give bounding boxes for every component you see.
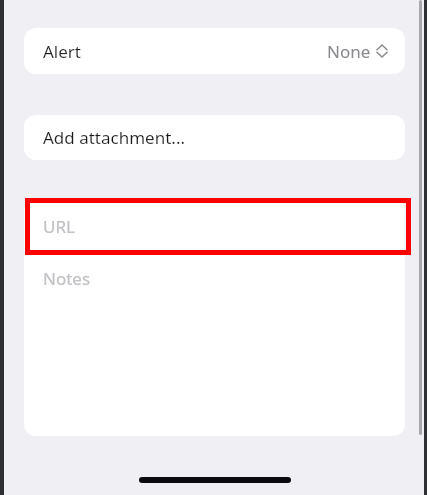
button[interactable]: URL [24,199,405,253]
staticText: None [327,40,371,63]
button[interactable]: Notes [24,253,405,436]
staticText: Alert [43,40,81,63]
button[interactable]: Alert [24,28,405,74]
staticText: Add attachment... [43,126,186,149]
staticText: Notes [43,267,91,290]
staticText: URL [43,215,75,238]
other: Change alert [376,43,388,59]
button[interactable]: Add attachment... [24,115,405,160]
